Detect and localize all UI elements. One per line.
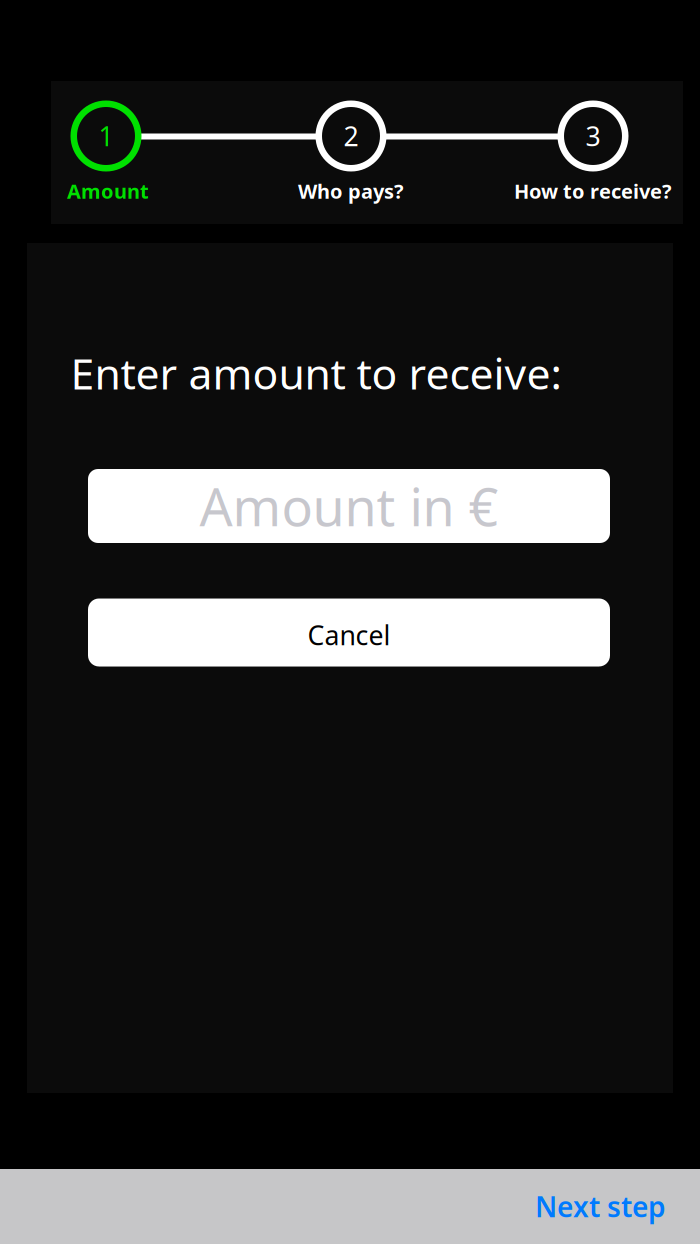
staticText: 1 (98, 118, 113, 154)
staticText: Cancel (307, 617, 390, 653)
staticText: Amount (67, 178, 149, 204)
button[interactable]: Cancel (88, 598, 610, 666)
staticText: Enter amount to receive: (70, 345, 561, 401)
staticText: Amount in € (199, 471, 498, 541)
staticText: Next step (535, 1188, 666, 1225)
button[interactable]: Next step (0, 1169, 700, 1244)
staticText: Who pays? (298, 178, 404, 204)
staticText: 2 (343, 118, 358, 154)
staticText: How to receive? (514, 178, 672, 204)
staticText: 3 (585, 118, 600, 154)
button[interactable]: Amount in € (88, 469, 610, 543)
